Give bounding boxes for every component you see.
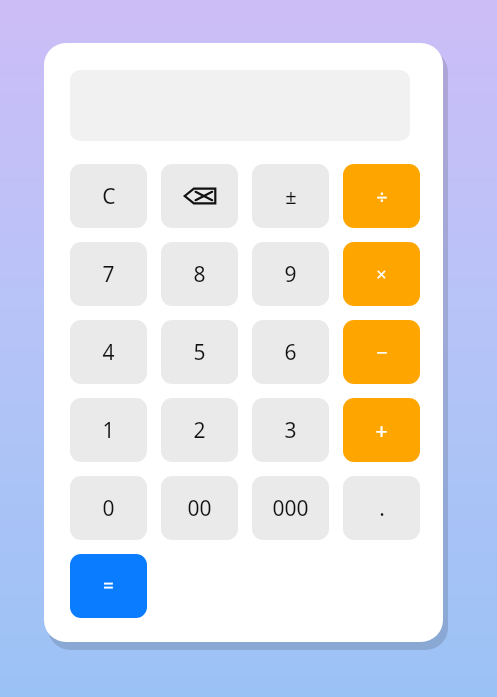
button[interactable]: 0 xyxy=(70,476,147,540)
staticText: 5 xyxy=(193,338,206,367)
button[interactable]: 3 xyxy=(252,398,329,462)
button[interactable]: 8 xyxy=(161,242,238,306)
button[interactable]: 4 xyxy=(70,320,147,384)
staticText: 2 xyxy=(193,416,206,445)
button[interactable]: 2 xyxy=(161,398,238,462)
button[interactable]: + xyxy=(343,398,420,462)
staticText: 9 xyxy=(284,260,297,289)
staticText: 7 xyxy=(102,260,115,289)
staticText: 00 xyxy=(187,494,212,523)
staticText: ÷ xyxy=(376,183,388,210)
button[interactable]: ± xyxy=(252,164,329,228)
button[interactable]: Backspace xyxy=(161,164,238,228)
button[interactable]: 7 xyxy=(70,242,147,306)
staticText: 1 xyxy=(102,416,115,445)
staticText: 6 xyxy=(284,338,297,367)
staticText: = xyxy=(103,573,114,599)
staticText: × xyxy=(376,262,387,287)
staticText: + xyxy=(375,415,388,445)
staticText: ± xyxy=(285,183,297,210)
staticText: − xyxy=(376,339,388,366)
button[interactable]: C xyxy=(70,164,147,228)
button[interactable]: 1 xyxy=(70,398,147,462)
button[interactable]: ÷ xyxy=(343,164,420,228)
staticText: 8 xyxy=(193,260,206,289)
staticText: 4 xyxy=(102,338,115,367)
button[interactable]: 00 xyxy=(161,476,238,540)
staticText: 000 xyxy=(272,494,309,523)
button[interactable]: 6 xyxy=(252,320,329,384)
button[interactable]: 5 xyxy=(161,320,238,384)
staticText: 3 xyxy=(284,416,297,445)
staticText: 0 xyxy=(102,494,115,523)
button[interactable]: 9 xyxy=(252,242,329,306)
button[interactable]: 000 xyxy=(252,476,329,540)
staticText: . xyxy=(379,494,385,523)
button[interactable]: . xyxy=(343,476,420,540)
button[interactable]: − xyxy=(343,320,420,384)
staticText: C xyxy=(102,182,116,211)
button[interactable]: × xyxy=(343,242,420,306)
button[interactable]: = xyxy=(70,554,147,618)
